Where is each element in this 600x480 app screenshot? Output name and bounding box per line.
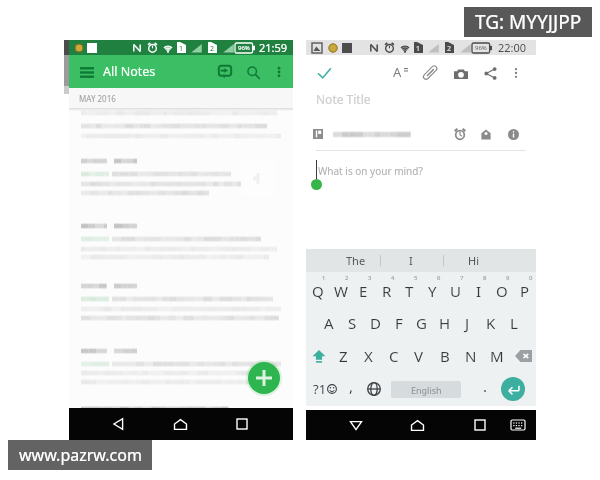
staticText: E bbox=[359, 281, 368, 301]
button[interactable]: M bbox=[484, 339, 510, 372]
staticText: I bbox=[476, 281, 482, 301]
button[interactable]: Note info bbox=[505, 126, 521, 142]
staticText: U bbox=[450, 281, 461, 301]
staticText: A bbox=[324, 313, 334, 333]
button[interactable]: More options bbox=[268, 61, 290, 83]
staticText: 96% bbox=[238, 44, 250, 52]
staticText: TG: MYYJJPP bbox=[475, 9, 582, 35]
staticText: L bbox=[510, 313, 518, 333]
staticText: 4 bbox=[391, 274, 395, 282]
staticText: 2 bbox=[210, 44, 215, 54]
staticText: 5 bbox=[414, 274, 418, 282]
button[interactable]: Save note bbox=[312, 61, 336, 85]
button[interactable]: Import note bbox=[213, 60, 237, 84]
staticText: 1 bbox=[179, 44, 184, 54]
staticText: X bbox=[364, 346, 373, 366]
button[interactable]: Home bbox=[168, 412, 192, 436]
button[interactable]: 7 bbox=[444, 272, 467, 306]
button[interactable]: Back bbox=[107, 412, 131, 436]
staticText: All Notes bbox=[103, 63, 156, 80]
staticText: I bbox=[409, 253, 413, 268]
button[interactable]: Change language bbox=[363, 372, 385, 406]
button[interactable]: Set reminder bbox=[452, 126, 468, 142]
button[interactable]: Share bbox=[478, 61, 502, 85]
button[interactable]: . bbox=[476, 372, 494, 406]
button[interactable]: B bbox=[432, 339, 458, 372]
button[interactable]: Recent apps bbox=[230, 412, 254, 436]
button[interactable]: Open navigation drawer bbox=[75, 60, 99, 84]
button[interactable]: 4 bbox=[375, 272, 398, 306]
staticText: 6 bbox=[437, 274, 441, 282]
button[interactable]: S bbox=[341, 306, 364, 339]
button[interactable]: , bbox=[342, 372, 360, 406]
button[interactable]: G bbox=[410, 306, 433, 339]
button[interactable]: 1 bbox=[306, 272, 329, 306]
staticText: N bbox=[465, 346, 477, 366]
button[interactable]: Create new note bbox=[248, 362, 280, 394]
staticText: P bbox=[520, 281, 530, 301]
button[interactable]: 8 bbox=[467, 272, 490, 306]
button[interactable]: K bbox=[479, 306, 502, 339]
button[interactable]: Z bbox=[331, 339, 356, 372]
staticText: 7 bbox=[460, 274, 464, 282]
button[interactable]: X bbox=[356, 339, 381, 372]
button[interactable]: 3 bbox=[352, 272, 375, 306]
button[interactable]: Backspace bbox=[510, 339, 536, 372]
button[interactable]: A bbox=[317, 306, 341, 339]
staticText: . bbox=[483, 376, 488, 396]
staticText: K bbox=[486, 313, 496, 333]
staticText: H bbox=[439, 313, 451, 333]
staticText: 1 bbox=[416, 44, 421, 54]
button[interactable]: Take photo bbox=[449, 61, 473, 85]
button[interactable]: J bbox=[456, 306, 479, 339]
button[interactable]: Text formatting bbox=[388, 61, 412, 85]
button[interactable]: Shift bbox=[306, 339, 331, 372]
staticText: V bbox=[414, 346, 424, 366]
button[interactable]: V bbox=[406, 339, 432, 372]
button[interactable]: L bbox=[502, 306, 525, 339]
button[interactable]: F bbox=[387, 306, 410, 339]
button[interactable]: D bbox=[364, 306, 387, 339]
staticText: MAY 2016 bbox=[79, 93, 116, 104]
button[interactable]: Symbols bbox=[306, 372, 340, 406]
button[interactable]: Enter bbox=[501, 377, 525, 401]
staticText: C bbox=[389, 346, 399, 366]
button[interactable]: Attach file bbox=[418, 61, 442, 85]
staticText: O bbox=[496, 281, 508, 301]
button[interactable]: 9 bbox=[490, 272, 513, 306]
staticText: 96% bbox=[475, 44, 487, 52]
staticText: Y bbox=[428, 281, 437, 301]
button[interactable]: H bbox=[433, 306, 456, 339]
staticText: ?1 bbox=[313, 380, 327, 398]
staticText: D bbox=[370, 313, 381, 333]
staticText: What is on your mind? bbox=[318, 164, 423, 178]
staticText: , bbox=[349, 376, 354, 396]
staticText: Note Title bbox=[316, 91, 371, 107]
staticText: T bbox=[405, 281, 414, 301]
button[interactable]: 5 bbox=[398, 272, 421, 306]
button[interactable]: Search bbox=[241, 60, 265, 84]
button[interactable]: 0 bbox=[513, 272, 536, 306]
staticText: 0 bbox=[529, 274, 533, 282]
button[interactable]: Switch keyboard bbox=[506, 413, 530, 437]
button[interactable]: Home bbox=[405, 413, 429, 437]
staticText: 9 bbox=[506, 274, 510, 282]
staticText: M bbox=[490, 346, 504, 366]
staticText: 3 bbox=[368, 274, 372, 282]
staticText: 2 bbox=[345, 274, 349, 282]
staticText: R bbox=[382, 281, 392, 301]
staticText: S bbox=[348, 313, 357, 333]
button[interactable]: Recent apps bbox=[468, 413, 492, 437]
staticText: F bbox=[395, 313, 403, 333]
button[interactable]: Lock note bbox=[478, 126, 494, 142]
button[interactable]: 6 bbox=[421, 272, 444, 306]
staticText: 8 bbox=[483, 274, 487, 282]
staticText: G bbox=[416, 313, 427, 333]
button[interactable]: 2 bbox=[329, 272, 352, 306]
button[interactable]: More options bbox=[505, 62, 527, 84]
button[interactable]: English bbox=[391, 381, 461, 398]
button[interactable]: Back bbox=[344, 413, 368, 437]
button[interactable]: C bbox=[381, 339, 406, 372]
button[interactable]: N bbox=[458, 339, 484, 372]
staticText: 22:00 bbox=[498, 40, 527, 55]
